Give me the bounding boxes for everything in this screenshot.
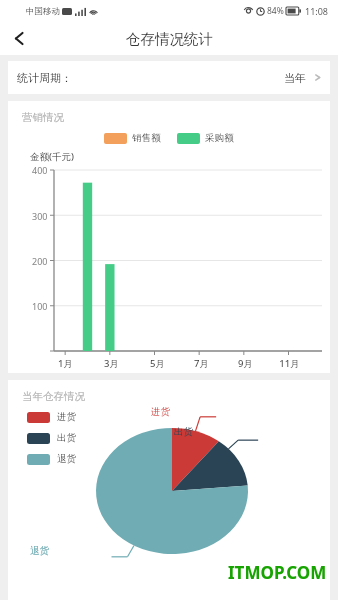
staticText: 3月 bbox=[104, 357, 119, 370]
staticText: 出货 bbox=[57, 432, 76, 444]
staticText: 采购额 bbox=[205, 132, 234, 144]
button[interactable]: Back bbox=[0, 22, 38, 55]
staticText: 仓存情况统计 bbox=[126, 30, 213, 48]
staticText: 出货 bbox=[174, 426, 193, 438]
staticText: ITMOP.COM bbox=[228, 561, 327, 584]
staticText: 金额(千元) bbox=[30, 150, 74, 163]
staticText: 中国移动 bbox=[26, 6, 60, 17]
staticText: 营销情况 bbox=[22, 111, 64, 124]
staticText: 退货 bbox=[57, 453, 76, 465]
button[interactable]: 统计周期： bbox=[8, 61, 330, 94]
staticText: 11:08 bbox=[305, 5, 329, 17]
staticText: 当年 bbox=[284, 71, 306, 85]
staticText: 1月 bbox=[58, 357, 73, 370]
staticText: 11月 bbox=[279, 357, 300, 370]
staticText: 100 bbox=[32, 300, 48, 312]
staticText: 销售额 bbox=[132, 132, 161, 144]
staticText: 200 bbox=[32, 255, 48, 267]
staticText: 9月 bbox=[238, 357, 253, 370]
staticText: 统计周期： bbox=[17, 71, 72, 85]
staticText: 84% bbox=[267, 5, 284, 17]
staticText: 进货 bbox=[57, 411, 76, 423]
staticText: 当年仓存情况 bbox=[22, 390, 85, 403]
staticText: 300 bbox=[32, 210, 48, 222]
staticText: 进货 bbox=[151, 406, 170, 418]
staticText: 退货 bbox=[30, 545, 49, 557]
staticText: 7月 bbox=[194, 357, 209, 370]
staticText: 5月 bbox=[150, 357, 165, 370]
staticText: 400 bbox=[32, 164, 48, 176]
